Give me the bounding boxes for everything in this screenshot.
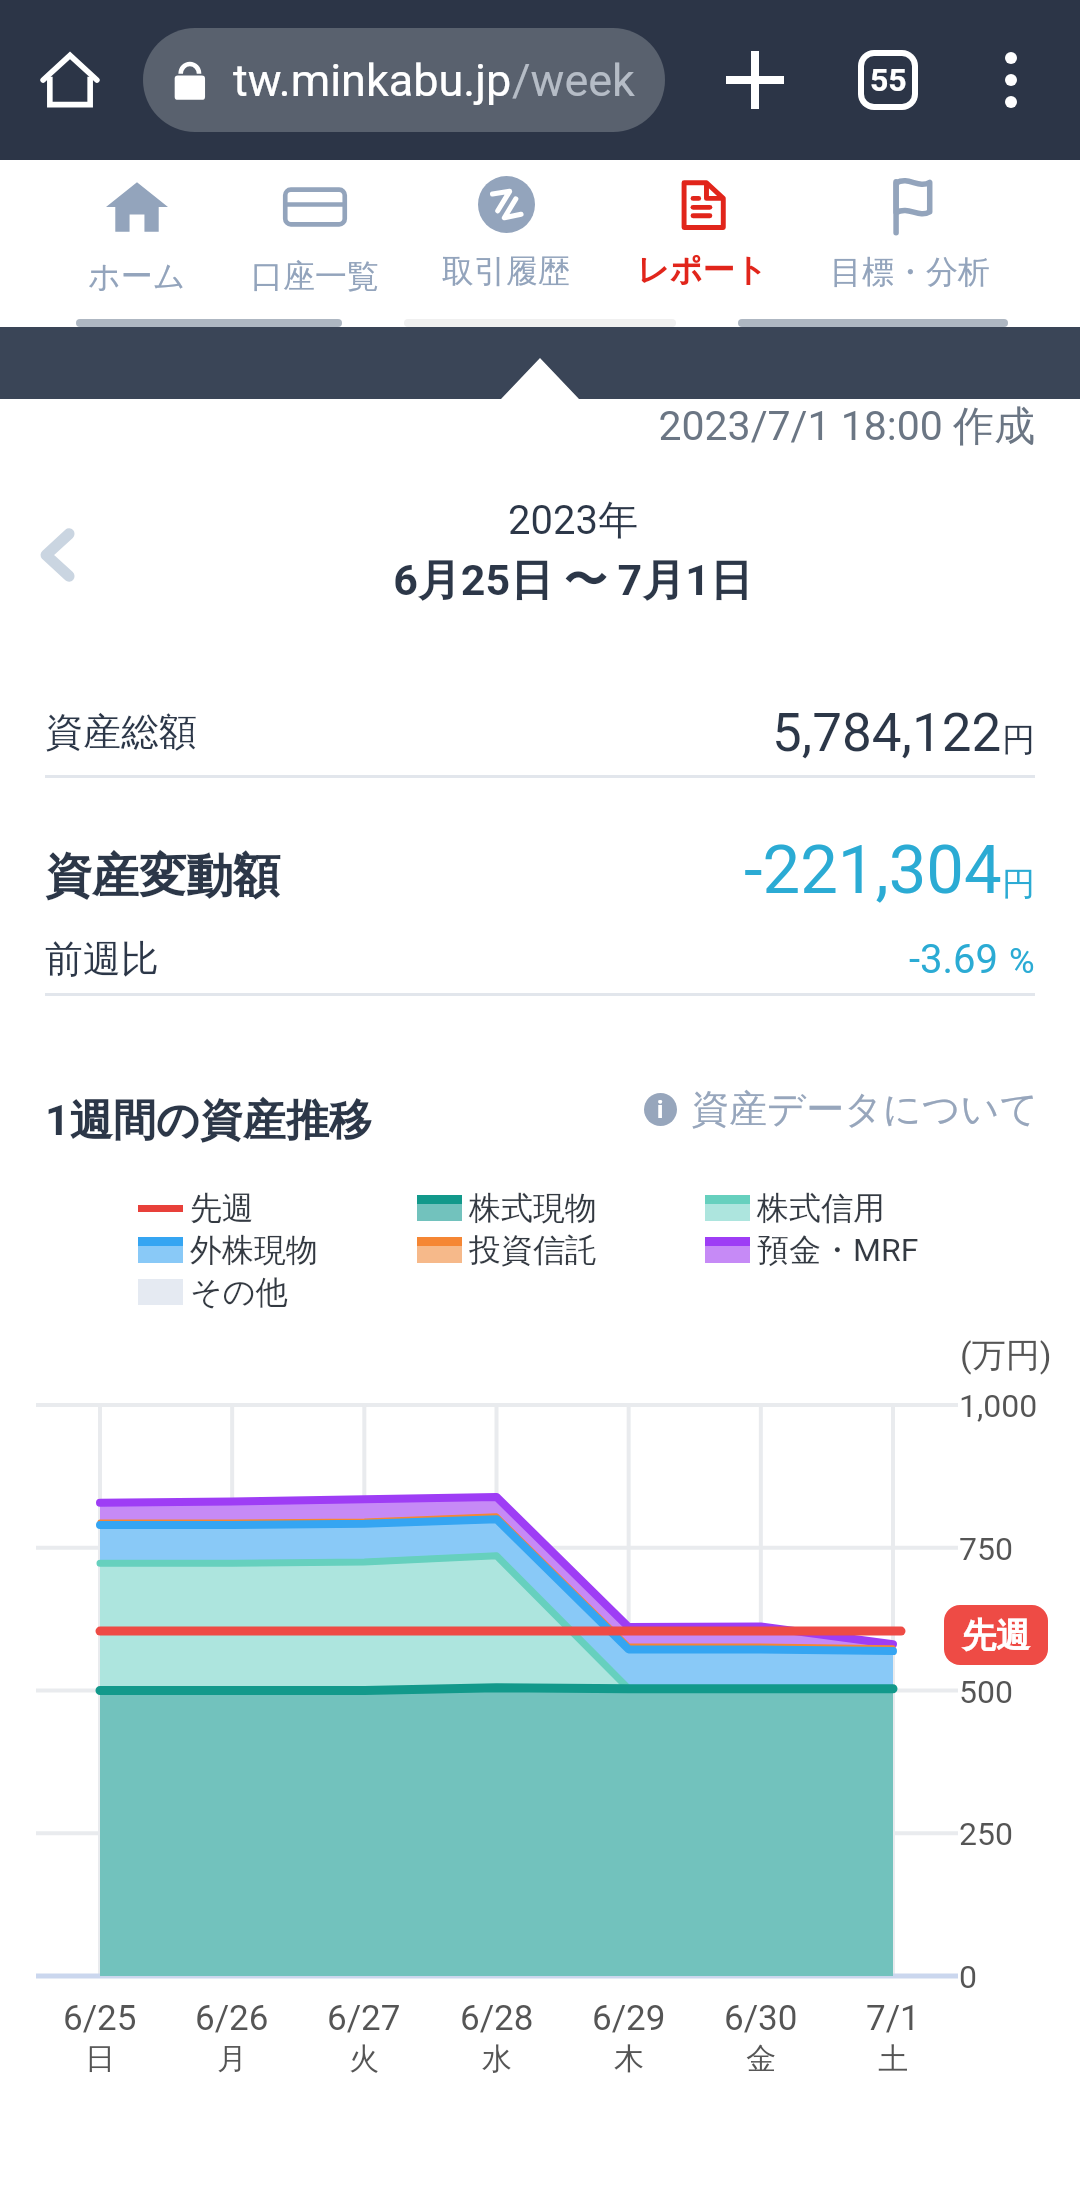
button[interactable]: tw.minkabu.jp: [143, 28, 665, 132]
staticText: -3.69: [909, 936, 999, 983]
staticText: 750: [959, 1530, 1013, 1568]
staticText: (万円): [960, 1334, 1052, 1377]
staticText: 株式信用: [757, 1188, 885, 1228]
button[interactable]: i: [644, 1085, 1039, 1133]
staticText: 投資信託: [469, 1230, 597, 1270]
staticText: 1,000: [959, 1387, 1038, 1425]
staticText: 6/27: [327, 1998, 401, 2039]
staticText: 取引履歴: [442, 251, 570, 291]
staticText: 6/26: [195, 1998, 269, 2039]
staticText: 目標・分析: [830, 252, 990, 292]
staticText: 5,784,122: [772, 702, 1002, 764]
staticText: 6月25日 〜 7月1日: [66, 554, 1080, 608]
staticText: レポート: [637, 250, 768, 290]
staticText: 7/1: [866, 1998, 920, 2039]
staticText: 資産データについて: [691, 1085, 1039, 1133]
button[interactable]: 目標・分析: [805, 160, 1015, 324]
button[interactable]: ホーム: [49, 160, 225, 324]
staticText: /week: [512, 54, 635, 107]
staticText: 6/30: [724, 1998, 798, 2039]
staticText: 円: [1002, 863, 1035, 905]
staticText: 2023/7/1 18:00 作成: [0, 401, 1035, 453]
button[interactable]: レポート: [602, 160, 802, 324]
staticText: 6/28: [460, 1998, 534, 2039]
staticText: tw.minkabu.jp: [233, 54, 512, 107]
staticText: 6/29: [592, 1998, 666, 2039]
button[interactable]: Tabs: [845, 37, 931, 123]
button[interactable]: Previous week: [20, 517, 96, 593]
staticText: 外株現物: [190, 1230, 318, 1270]
staticText: %: [1009, 941, 1035, 982]
button[interactable]: More options: [968, 37, 1054, 123]
staticText: 500: [959, 1673, 1013, 1711]
staticText: 木: [614, 2040, 644, 2078]
staticText: 2023年: [66, 495, 1080, 545]
staticText: 先週: [190, 1188, 254, 1228]
staticText: i: [657, 1096, 664, 1124]
staticText: 資産変動額: [45, 847, 280, 906]
staticText: 口座一覧: [251, 256, 379, 296]
staticText: 250: [959, 1815, 1013, 1853]
staticText: 資産総額: [45, 708, 197, 756]
button[interactable]: 取引履歴: [409, 160, 603, 324]
staticText: 55: [870, 61, 907, 99]
staticText: 金: [746, 2040, 776, 2078]
staticText: 月: [217, 2040, 247, 2078]
staticText: 日: [85, 2040, 115, 2078]
staticText: 6/25: [63, 1998, 137, 2039]
staticText: 円: [1002, 719, 1035, 761]
staticText: 1週間の資産推移: [45, 1094, 372, 1148]
button[interactable]: Home: [28, 38, 112, 122]
button[interactable]: New tab: [712, 37, 798, 123]
staticText: -221,304: [744, 831, 1002, 910]
staticText: 預金・MRF: [757, 1230, 919, 1270]
staticText: 土: [878, 2040, 908, 2078]
staticText: 株式現物: [469, 1188, 597, 1228]
staticText: 0: [959, 1958, 977, 1996]
staticText: ホーム: [88, 256, 186, 296]
staticText: その他: [190, 1272, 288, 1312]
staticText: 火: [349, 2040, 379, 2078]
staticText: 水: [482, 2040, 512, 2078]
button[interactable]: 口座一覧: [220, 160, 410, 324]
staticText: 先週: [962, 1614, 1030, 1657]
staticText: 前週比: [45, 935, 159, 983]
